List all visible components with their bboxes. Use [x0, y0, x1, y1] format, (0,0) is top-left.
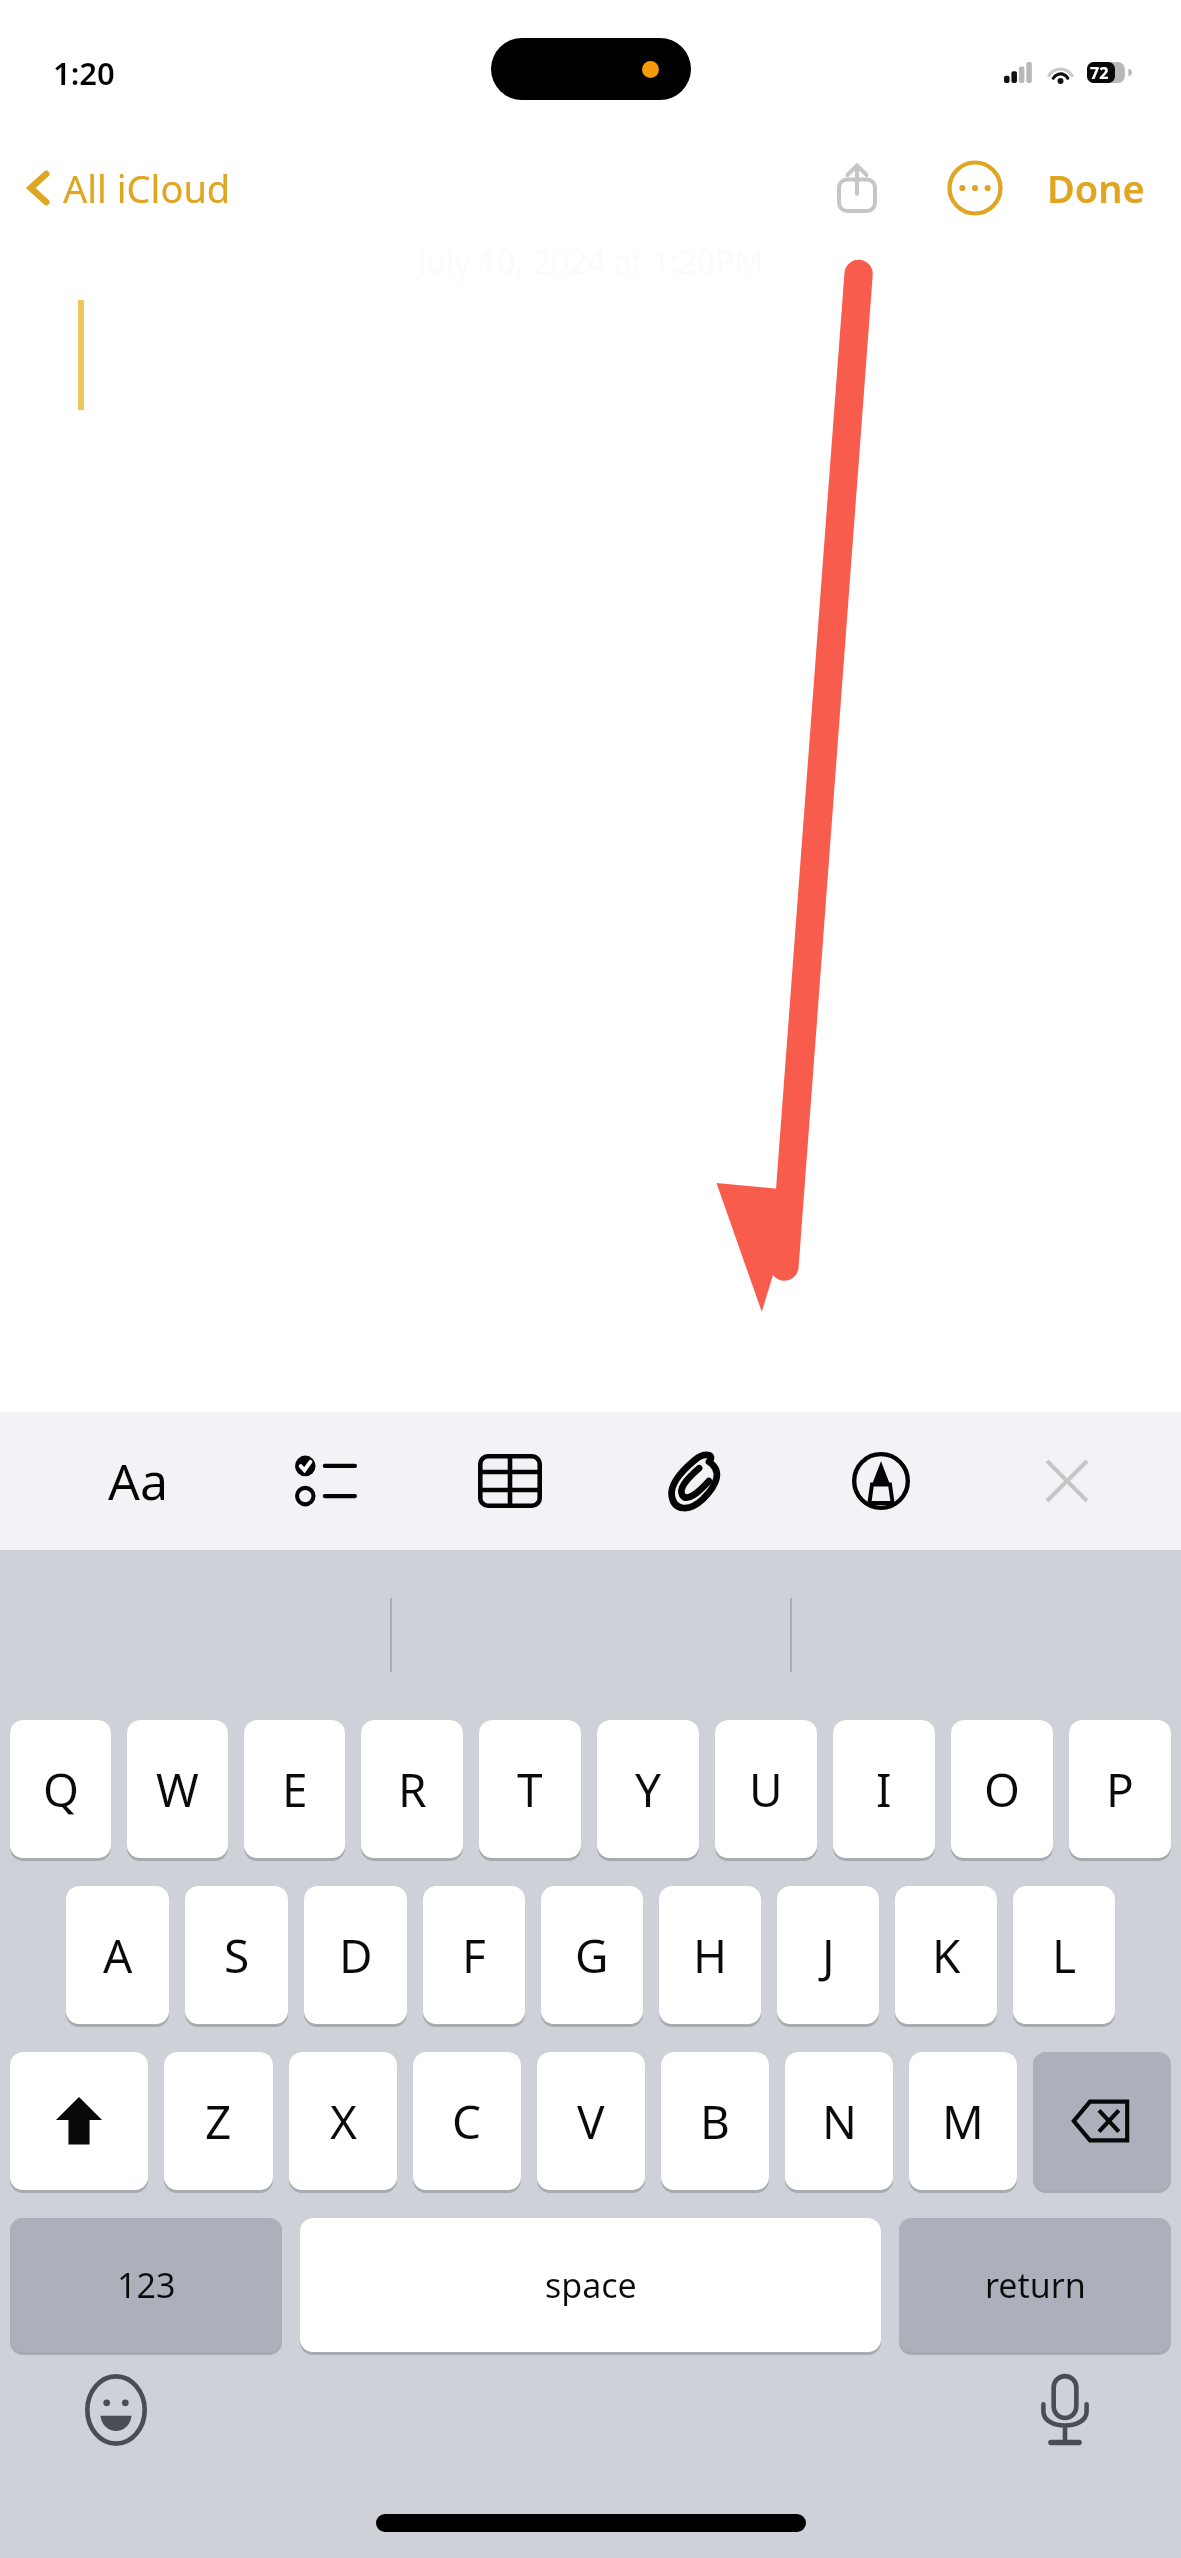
- button[interactable]: Z: [164, 2052, 273, 2196]
- staticText: N: [822, 2090, 857, 2153]
- staticText: A: [103, 1924, 133, 1987]
- button[interactable]: More: [939, 152, 1011, 224]
- button[interactable]: H: [659, 1886, 761, 2030]
- staticText: Aa: [108, 1447, 168, 1515]
- button[interactable]: O: [951, 1720, 1053, 1864]
- staticText: T: [517, 1758, 543, 1821]
- button[interactable]: Y: [597, 1720, 699, 1864]
- staticText: K: [932, 1924, 961, 1987]
- button[interactable]: K: [895, 1886, 997, 2030]
- button[interactable]: All iCloud: [0, 154, 245, 222]
- button[interactable]: D: [304, 1886, 407, 2030]
- button[interactable]: Dictation: [1027, 2372, 1103, 2448]
- staticText: G: [575, 1924, 609, 1987]
- button[interactable]: Shift: [10, 2052, 148, 2196]
- button[interactable]: L: [1013, 1886, 1115, 2030]
- button[interactable]: Done: [1039, 154, 1153, 222]
- staticText: J: [822, 1924, 835, 1987]
- staticText: R: [398, 1758, 427, 1821]
- button[interactable]: S: [185, 1886, 288, 2030]
- button[interactable]: Markup: [827, 1421, 935, 1541]
- staticText: B: [700, 2090, 730, 2153]
- staticText: V: [577, 2090, 605, 2153]
- staticText: Done: [1047, 162, 1145, 214]
- button[interactable]: T: [479, 1720, 581, 1864]
- button[interactable]: Attach file: [641, 1421, 749, 1541]
- staticText: O: [984, 1758, 1020, 1821]
- button[interactable]: U: [715, 1720, 817, 1864]
- staticText: W: [156, 1758, 199, 1821]
- button[interactable]: Backspace: [1033, 2052, 1171, 2196]
- button[interactable]: Table: [456, 1421, 564, 1541]
- button[interactable]: M: [909, 2052, 1017, 2196]
- button[interactable]: space: [300, 2218, 881, 2358]
- button[interactable]: Share: [819, 150, 895, 226]
- button[interactable]: Emoji: [78, 2372, 154, 2448]
- button[interactable]: E: [244, 1720, 345, 1864]
- button[interactable]: W: [127, 1720, 228, 1864]
- staticText: I: [876, 1758, 892, 1821]
- staticText: Z: [205, 2090, 232, 2153]
- staticText: M: [942, 2090, 984, 2153]
- button[interactable]: I: [833, 1720, 935, 1864]
- staticText: U: [749, 1758, 783, 1821]
- staticText: H: [693, 1924, 728, 1987]
- staticText: 123: [117, 2262, 176, 2308]
- button[interactable]: return: [899, 2218, 1171, 2358]
- button[interactable]: G: [541, 1886, 643, 2030]
- button[interactable]: R: [361, 1720, 463, 1864]
- staticText: Y: [635, 1758, 662, 1821]
- button[interactable]: F: [423, 1886, 525, 2030]
- staticText: F: [462, 1924, 486, 1987]
- button[interactable]: C: [413, 2052, 521, 2196]
- button[interactable]: Checklist: [270, 1421, 378, 1541]
- button[interactable]: A: [66, 1886, 169, 2030]
- staticText: 1:20: [53, 52, 115, 94]
- button[interactable]: X: [289, 2052, 397, 2196]
- staticText: Q: [43, 1758, 79, 1821]
- staticText: E: [282, 1758, 308, 1821]
- button[interactable]: Q: [10, 1720, 111, 1864]
- staticText: L: [1052, 1924, 1077, 1987]
- button[interactable]: J: [777, 1886, 879, 2030]
- staticText: P: [1106, 1758, 1134, 1821]
- staticText: X: [330, 2090, 357, 2153]
- button[interactable]: B: [661, 2052, 769, 2196]
- staticText: return: [985, 2262, 1086, 2308]
- staticText: D: [339, 1924, 373, 1987]
- staticText: S: [224, 1924, 250, 1987]
- staticText: All iCloud: [63, 162, 231, 214]
- staticText: 72: [1090, 62, 1109, 83]
- button[interactable]: V: [537, 2052, 645, 2196]
- staticText: space: [545, 2262, 637, 2308]
- button[interactable]: Text format: [84, 1421, 192, 1541]
- button[interactable]: Close keyboard: [1013, 1421, 1121, 1541]
- button[interactable]: N: [785, 2052, 893, 2196]
- button[interactable]: P: [1069, 1720, 1171, 1864]
- button[interactable]: 123: [10, 2218, 282, 2358]
- staticText: C: [452, 2090, 482, 2153]
